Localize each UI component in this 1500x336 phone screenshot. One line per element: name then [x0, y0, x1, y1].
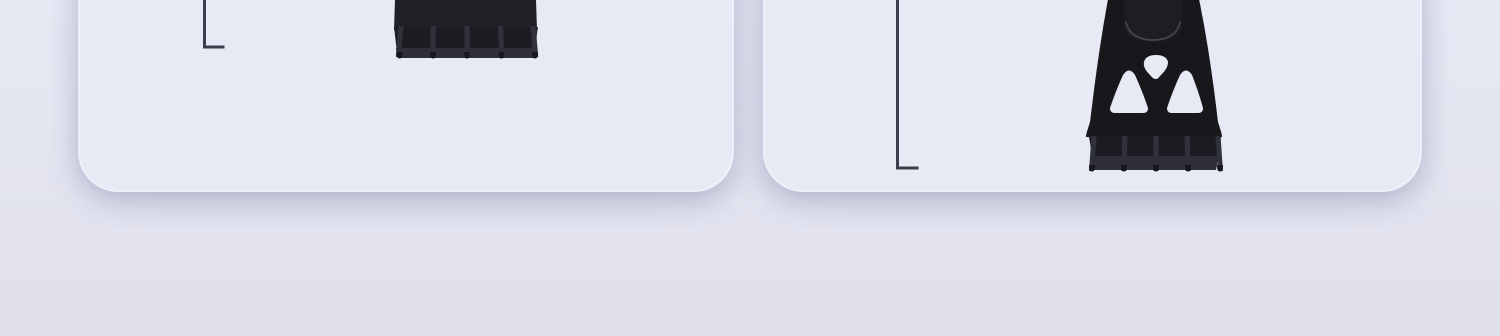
button[interactable]: Ice scraper with handle	[0, 0, 1500, 336]
button[interactable]: Ice scraper with wide blade	[0, 0, 1500, 336]
